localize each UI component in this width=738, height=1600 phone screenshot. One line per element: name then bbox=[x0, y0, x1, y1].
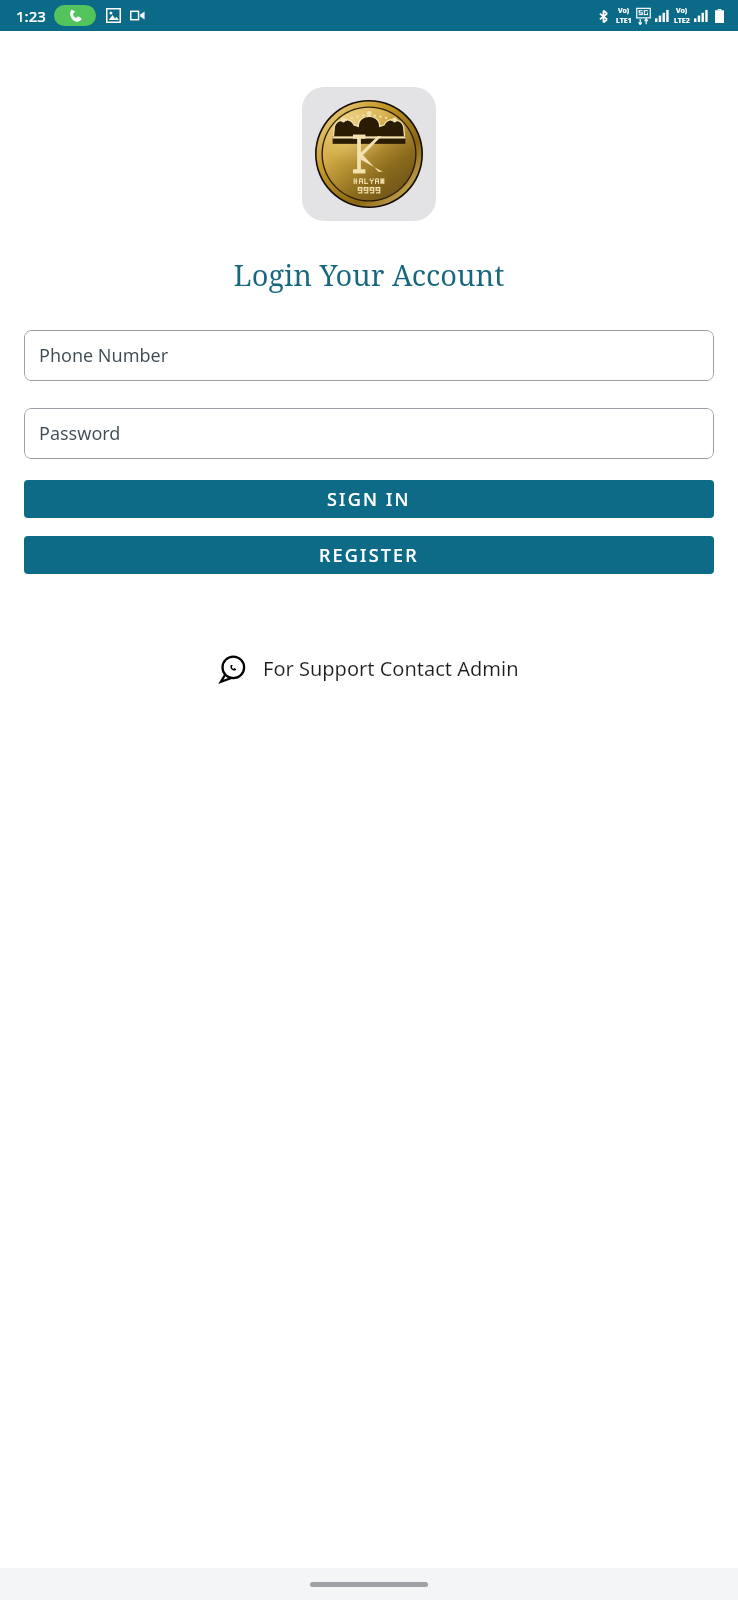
staticText: REGISTER bbox=[319, 543, 419, 568]
staticText: LTE2 bbox=[674, 16, 690, 26]
staticText: Vo) bbox=[676, 6, 688, 16]
button[interactable]: Phone Number bbox=[24, 330, 714, 381]
staticText: For Support Contact Admin bbox=[263, 655, 519, 682]
staticText: LTE1 bbox=[616, 16, 632, 26]
staticText: 1:23 bbox=[16, 6, 46, 26]
staticText: Phone Number bbox=[39, 343, 169, 368]
button[interactable]: REGISTER bbox=[24, 536, 714, 574]
button[interactable]: Password bbox=[24, 408, 714, 459]
staticText: Vo) bbox=[618, 6, 630, 16]
staticText: Password bbox=[39, 421, 121, 446]
staticText: Login Your Account bbox=[0, 255, 738, 294]
button[interactable]: SIGN IN bbox=[24, 480, 714, 518]
button[interactable]: For Support Contact Admin bbox=[0, 649, 738, 688]
staticText: SIGN IN bbox=[327, 487, 411, 512]
